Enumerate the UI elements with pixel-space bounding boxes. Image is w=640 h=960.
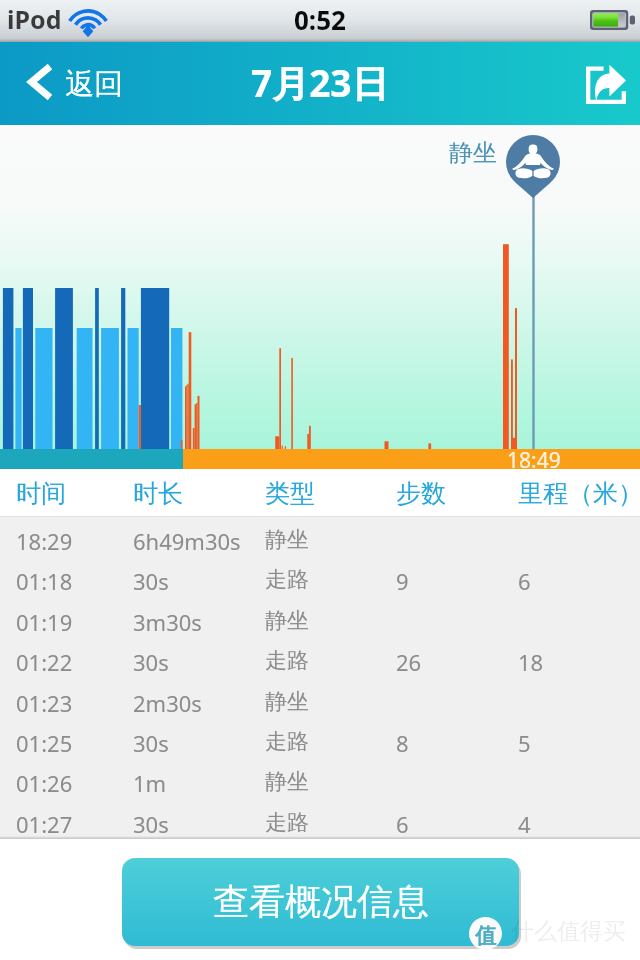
staticText: 01:22 [16, 647, 73, 677]
staticText: 2m30s [133, 688, 202, 718]
staticText: 1m [133, 768, 167, 798]
staticText: 走路 [265, 647, 309, 675]
staticText: 8 [396, 728, 409, 758]
staticText: 3m30s [133, 607, 202, 637]
button[interactable]: 查看概况信息 [122, 858, 519, 946]
staticText: 静坐 [265, 607, 309, 635]
staticText: 18:49 [507, 446, 561, 475]
staticText: 静坐 [265, 768, 309, 796]
staticText: 30s [133, 728, 169, 758]
staticText: 01:26 [16, 768, 73, 798]
staticText: 走路 [265, 566, 309, 594]
staticText: 4 [518, 809, 531, 839]
staticText: 5 [518, 728, 531, 758]
staticText: 01:18 [16, 566, 73, 596]
staticText: 静坐 [265, 688, 309, 716]
staticText: 时长 [133, 478, 183, 509]
staticText: 6h49m30s [133, 526, 241, 556]
staticText: iPod [7, 2, 62, 36]
staticText: 01:25 [16, 728, 73, 758]
staticText: 6 [518, 566, 531, 596]
staticText: 01:19 [16, 607, 73, 637]
staticText: 0:52 [294, 2, 346, 37]
staticText: 什么值得买 [511, 917, 626, 946]
staticText: 01:27 [16, 809, 73, 839]
button[interactable]: Share [572, 53, 634, 113]
staticText: 18:29 [16, 526, 73, 556]
staticText: 走路 [265, 728, 309, 756]
staticText: 30s [133, 647, 169, 677]
staticText: 里程（米） [518, 478, 640, 509]
staticText: 类型 [265, 478, 315, 509]
staticText: 步数 [396, 478, 446, 509]
staticText: 30s [133, 566, 169, 596]
staticText: 7月23日 [251, 57, 389, 108]
staticText: 值 [475, 923, 496, 949]
staticText: 30s [133, 809, 169, 839]
staticText: 26 [396, 647, 422, 677]
staticText: 9 [396, 566, 409, 596]
staticText: 静坐 [265, 526, 309, 554]
staticText: 返回 [65, 66, 123, 103]
staticText: 01:23 [16, 688, 73, 718]
staticText: 时间 [16, 478, 66, 509]
button[interactable]: 返回 [20, 53, 132, 113]
staticText: 18 [518, 647, 544, 677]
staticText: 6 [396, 809, 409, 839]
staticText: 查看概况信息 [213, 879, 429, 924]
staticText: 静坐 [449, 138, 497, 168]
staticText: 走路 [265, 809, 309, 837]
